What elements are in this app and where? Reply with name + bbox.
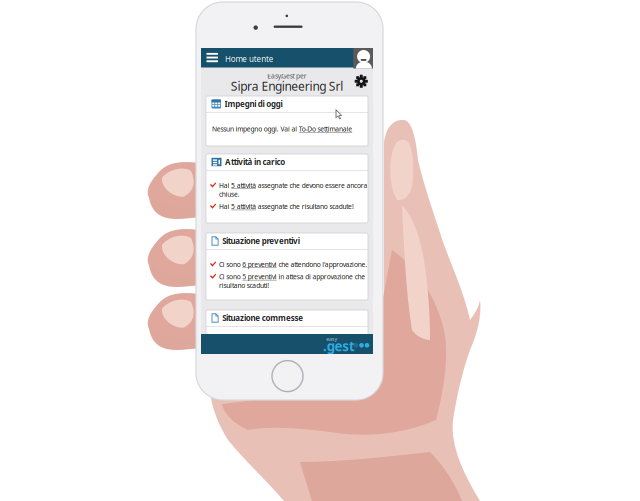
staticText: Situazione preventivi: [222, 236, 300, 246]
button[interactable]: Home utente: [201, 48, 373, 68]
button[interactable]: Impegni di oggi: [206, 96, 368, 146]
staticText: .gest: [323, 337, 355, 355]
button[interactable]: Attività in carico: [206, 154, 368, 223]
button[interactable]: Situazione commesse: [206, 310, 368, 350]
staticText: Nessun impegno oggi. Vai al To-Do settim…: [212, 125, 352, 133]
staticText: easy: [326, 335, 337, 343]
staticText: Ci sono 6 preventivi che attendono l'app…: [219, 260, 367, 269]
staticText: Ci sono 5 preventivi in attesa di approv…: [219, 272, 365, 290]
staticText: Situazione commesse: [222, 313, 303, 323]
staticText: Sipra Engineering Srl: [231, 78, 343, 94]
staticText: Home utente: [225, 54, 274, 64]
staticText: Impegni di oggi: [225, 99, 282, 109]
button[interactable]: Settings: [352, 72, 370, 90]
button[interactable]: Situazione preventivi: [206, 233, 368, 300]
staticText: Hai 5 attività assegnate che devono esse…: [219, 181, 367, 199]
staticText: Easy.Gest per: [267, 72, 307, 80]
staticText: Attività in carico: [225, 157, 285, 167]
staticText: Hai 5 attività assegnate che risultano s…: [219, 202, 354, 211]
